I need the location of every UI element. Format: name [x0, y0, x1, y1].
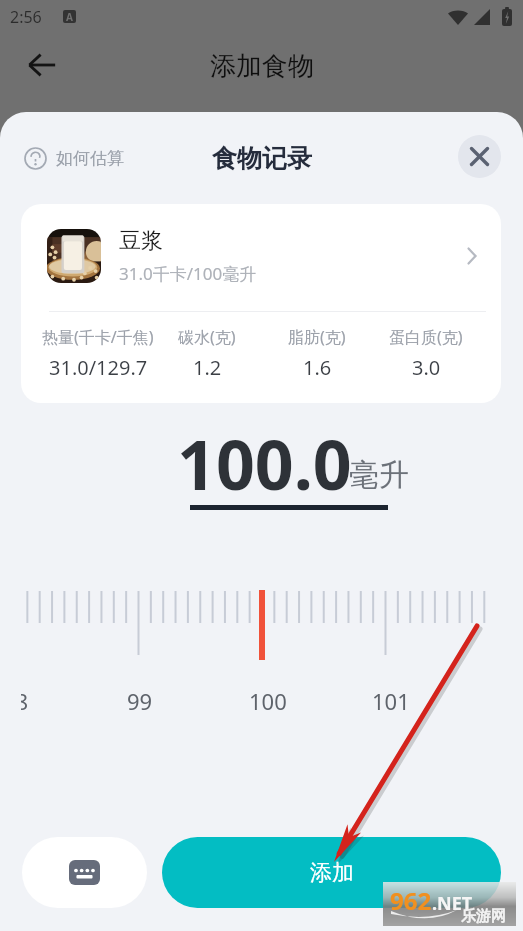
staticText: 乐游网 [461, 907, 506, 926]
staticText: 3.0 [412, 354, 441, 381]
staticText: 脂肪(克) [288, 326, 346, 348]
staticText: 碳水(克) [178, 326, 236, 348]
staticText: 食物记录 [212, 143, 312, 174]
staticText: 101 [372, 686, 410, 716]
button[interactable]: 添加 [162, 837, 501, 908]
button[interactable]: Back [22, 45, 62, 85]
staticText: 添加食物 [210, 50, 314, 83]
staticText: 99 [127, 686, 153, 716]
staticText: 添加 [310, 859, 354, 887]
staticText: .NET [432, 891, 473, 916]
button[interactable]: 豆浆 [21, 204, 501, 307]
button[interactable]: 如何估算 [20, 143, 128, 174]
staticText: 31.0/129.7 [49, 354, 148, 381]
staticText: 100 [249, 686, 287, 716]
staticText: 豆浆 [119, 227, 163, 255]
staticText: 如何估算 [56, 148, 124, 169]
staticText: 热量(千卡/千焦) [42, 326, 154, 348]
staticText: 98 [3, 686, 29, 716]
staticText: 31.0千卡/100毫升 [119, 262, 257, 285]
staticText: 962 [390, 884, 432, 917]
staticText: 100.0 [177, 417, 352, 510]
staticText: 2:56 [10, 6, 42, 28]
staticText: 蛋白质(克) [389, 326, 463, 348]
staticText: 1.6 [303, 354, 332, 381]
staticText: A [66, 10, 73, 23]
staticText: 1.2 [193, 354, 222, 381]
button[interactable]: Keyboard [22, 837, 147, 908]
staticText: 毫升 [349, 456, 409, 494]
button[interactable]: Close [458, 135, 501, 178]
